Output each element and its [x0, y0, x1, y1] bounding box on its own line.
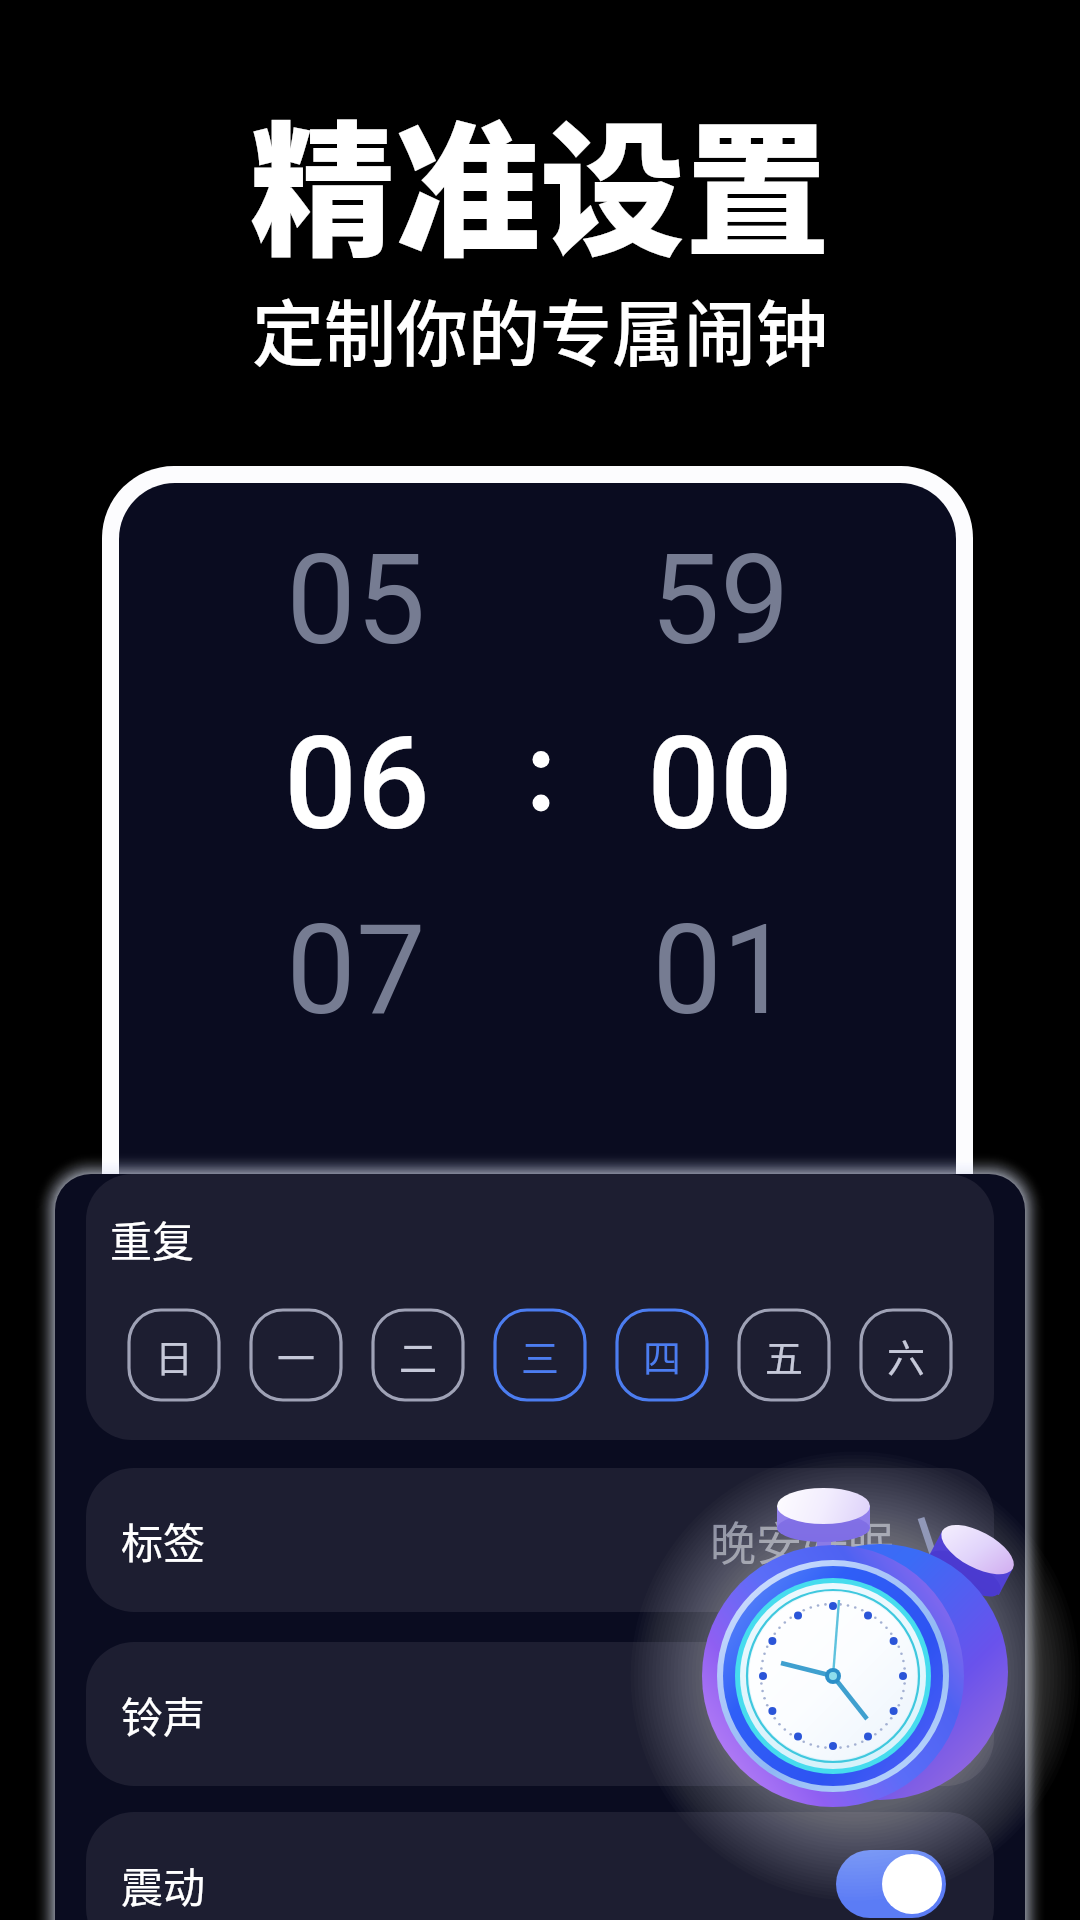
button[interactable]: 四 [617, 1310, 707, 1400]
button[interactable]: 01 [592, 880, 852, 1060]
button[interactable]: 六 [861, 1310, 951, 1400]
button[interactable]: 二 [373, 1310, 463, 1400]
button[interactable]: 日 [129, 1310, 219, 1400]
button[interactable]: 07 [226, 880, 486, 1060]
staticText: 01 [652, 898, 792, 1043]
button[interactable]: 59 [590, 510, 850, 690]
staticText: 三 [521, 1328, 560, 1383]
staticText: 59 [650, 528, 790, 673]
staticText: 07 [286, 898, 426, 1043]
button[interactable]: 标签 [86, 1468, 994, 1612]
button[interactable]: 铃声 [86, 1642, 994, 1786]
button[interactable]: 震动 [86, 1812, 994, 1920]
button[interactable]: 五 [739, 1310, 829, 1400]
button[interactable]: 一 [251, 1310, 341, 1400]
staticText: 定制你的专属闹钟 [252, 276, 829, 380]
staticText: 五 [765, 1328, 804, 1383]
button[interactable]: 06 [227, 694, 487, 874]
staticText: 铃声 [121, 1684, 206, 1745]
staticText: 重复 [110, 1208, 195, 1269]
staticText: 00 [647, 709, 793, 859]
staticText: 四 [643, 1328, 682, 1383]
staticText: 标签 [121, 1510, 206, 1571]
staticText: 日 [155, 1328, 194, 1383]
button[interactable]: 三 [495, 1310, 585, 1400]
button[interactable]: Vibration toggle [836, 1850, 946, 1918]
staticText: 晚安好眠 [710, 1507, 894, 1574]
staticText: 六 [887, 1328, 926, 1383]
staticText: 二 [399, 1328, 438, 1383]
staticText: 05 [286, 528, 426, 673]
staticText: 一 [277, 1328, 316, 1383]
staticText: 震动 [121, 1854, 206, 1915]
button[interactable]: 重复 [86, 1174, 994, 1440]
button[interactable]: 00 [590, 694, 850, 874]
button[interactable]: 05 [226, 510, 486, 690]
staticText: 精准设置 [250, 76, 830, 286]
staticText: 06 [284, 709, 430, 859]
